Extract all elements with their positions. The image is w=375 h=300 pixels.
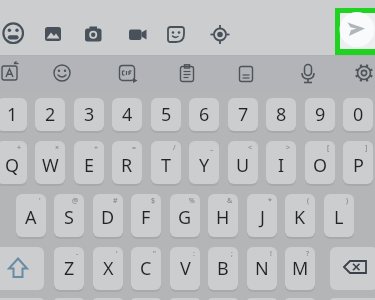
staticText: + <box>17 143 22 153</box>
staticText: $ <box>151 196 156 206</box>
button[interactable]: C <box>131 247 161 290</box>
staticText: ? <box>306 249 310 259</box>
button[interactable] <box>232 59 260 87</box>
button[interactable]: M <box>285 247 315 290</box>
button[interactable]: T <box>151 141 181 184</box>
button[interactable]: P <box>343 141 373 184</box>
staticText: B <box>217 256 229 281</box>
staticText: N <box>255 256 269 281</box>
button[interactable] <box>121 17 153 49</box>
button[interactable]: J <box>247 194 277 237</box>
staticText: : <box>193 249 195 259</box>
button[interactable] <box>340 13 375 49</box>
button[interactable]: S <box>54 194 84 237</box>
button[interactable] <box>294 59 322 87</box>
button[interactable]: 3 <box>74 98 104 131</box>
staticText: [ <box>327 143 330 153</box>
button[interactable] <box>77 17 109 49</box>
staticText: ÷ <box>94 143 99 153</box>
button[interactable]: W <box>35 141 65 184</box>
button[interactable]: 2 <box>35 98 65 131</box>
staticText: O <box>313 153 328 178</box>
button[interactable]: R <box>112 141 142 184</box>
button[interactable] <box>160 17 192 49</box>
button[interactable]: O <box>305 141 335 184</box>
staticText: 7 <box>238 102 249 127</box>
staticText: & <box>227 196 233 206</box>
staticText: S <box>64 205 74 230</box>
button[interactable]: Q <box>0 141 27 184</box>
button[interactable]: 9 <box>305 98 335 131</box>
staticText: E <box>84 153 95 178</box>
button[interactable]: D <box>93 194 123 237</box>
button[interactable]: H <box>208 194 238 237</box>
staticText: G <box>178 205 192 230</box>
staticText: _ <box>210 143 214 153</box>
staticText: * <box>268 196 272 206</box>
button[interactable]: Z <box>54 247 84 290</box>
button[interactable]: 0 <box>343 98 373 131</box>
staticText: F <box>141 205 151 230</box>
staticText: 1 <box>7 102 18 127</box>
staticText: T <box>161 153 172 178</box>
button[interactable] <box>0 59 24 87</box>
staticText: % <box>189 196 195 206</box>
button[interactable]: G <box>170 194 200 237</box>
button[interactable]: X <box>93 247 123 290</box>
button[interactable]: K <box>285 194 315 237</box>
button[interactable]: 1 <box>0 98 27 131</box>
staticText: P <box>353 153 364 178</box>
button[interactable] <box>48 59 76 87</box>
button[interactable] <box>113 59 141 87</box>
button[interactable]: B <box>208 247 238 290</box>
staticText: Q <box>5 153 20 178</box>
staticText: R <box>121 153 133 178</box>
staticText: ' <box>39 196 41 206</box>
button[interactable]: V <box>170 247 200 290</box>
staticText: M <box>292 256 309 281</box>
button[interactable] <box>0 247 44 290</box>
button[interactable]: I <box>266 141 296 184</box>
staticText: 3 <box>84 102 95 127</box>
staticText: ! <box>270 249 272 259</box>
button[interactable]: Y <box>189 141 219 184</box>
staticText: ' <box>116 249 118 259</box>
button[interactable]: 4 <box>112 98 142 131</box>
staticText: ] <box>365 143 368 153</box>
button[interactable]: 8 <box>266 98 296 131</box>
button[interactable]: L <box>324 194 354 237</box>
staticText: × <box>55 143 60 153</box>
staticText: I <box>278 153 285 178</box>
button[interactable]: 6 <box>189 98 219 131</box>
staticText: ( <box>307 196 310 206</box>
staticText: A <box>25 205 37 230</box>
button[interactable] <box>330 247 375 290</box>
staticText: 5 <box>161 102 172 127</box>
button[interactable]: F <box>131 194 161 237</box>
button[interactable]: N <box>247 247 277 290</box>
staticText: C <box>140 256 152 281</box>
staticText: " <box>153 249 156 259</box>
staticText: ) <box>346 196 349 206</box>
staticText: > <box>286 143 291 153</box>
button[interactable]: A <box>16 194 46 237</box>
staticText: @ <box>72 196 79 206</box>
button[interactable]: 7 <box>228 98 258 131</box>
staticText: Z <box>64 256 75 281</box>
staticText: W <box>42 153 59 178</box>
staticText: = <box>132 143 137 153</box>
staticText: H <box>216 205 230 230</box>
button[interactable] <box>204 17 236 49</box>
button[interactable]: E <box>74 141 104 184</box>
staticText: - <box>76 249 79 259</box>
button[interactable] <box>37 17 69 49</box>
button[interactable] <box>350 59 375 87</box>
staticText: 2 <box>45 102 56 127</box>
button[interactable] <box>173 59 201 87</box>
staticText: 0 <box>353 102 364 127</box>
button[interactable] <box>0 17 29 49</box>
button[interactable]: U <box>228 141 258 184</box>
button[interactable]: 5 <box>151 98 181 131</box>
staticText: # <box>113 196 118 206</box>
staticText: D <box>101 205 115 230</box>
